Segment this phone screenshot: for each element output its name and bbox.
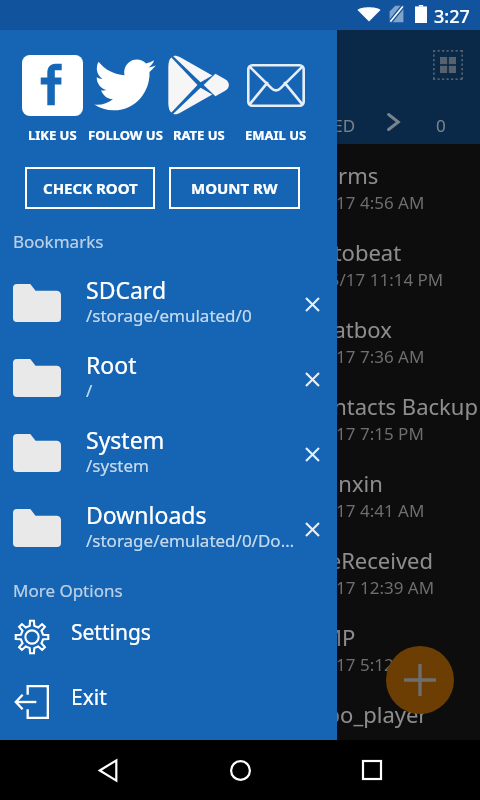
button[interactable]: Home: [216, 746, 264, 794]
staticText: FileReceived: [306, 545, 480, 575]
staticText: 4/4/17 4:56 AM: [304, 191, 480, 214]
staticText: /system: [86, 454, 300, 477]
button[interactable]: CHECK ROOT: [25, 167, 155, 209]
button[interactable]: RATE US: [162, 48, 236, 146]
staticText: 4/8/17 5:12 AM: [304, 653, 480, 676]
staticText: SDCard: [86, 274, 167, 305]
staticText: 4/4/17 7:36 AM: [304, 345, 480, 368]
staticText: Root: [86, 349, 137, 380]
staticText: Alarms: [306, 160, 480, 190]
staticText: /storage/emulated/0/Do…: [86, 529, 300, 552]
staticText: 4/8/17 4:41 AM: [304, 499, 480, 522]
staticText: 4/9/17 12:39 AM: [304, 576, 480, 599]
button[interactable]: Recents: [348, 746, 396, 794]
staticText: SHARED: [290, 114, 356, 137]
staticText: Exit: [71, 683, 107, 712]
button[interactable]: MOUNT RW: [169, 167, 300, 209]
staticText: System: [86, 424, 165, 455]
staticText: Downloads: [86, 499, 207, 530]
staticText: Contacts Backup: [306, 391, 480, 421]
staticText: LIKE US: [28, 126, 77, 144]
staticText: Settings: [71, 618, 151, 647]
button[interactable]: Remove SDCard: [292, 284, 332, 324]
button[interactable]: Add: [386, 646, 454, 714]
staticText: Wanxin: [306, 468, 480, 498]
staticText: CHECK ROOT: [43, 178, 138, 198]
staticText: /: [86, 379, 300, 402]
staticText: 0: [436, 114, 446, 137]
staticText: Bookmarks: [13, 230, 104, 253]
staticText: Autobeat: [306, 237, 480, 267]
button[interactable]: Back: [84, 746, 132, 794]
staticText: mbo_player: [306, 699, 480, 729]
button[interactable]: FOLLOW US: [88, 48, 162, 146]
staticText: More Options: [13, 579, 123, 602]
staticText: RATE US: [173, 126, 225, 144]
staticText: EMAIL US: [245, 126, 307, 144]
staticText: 4/8/17 7:15 PM: [304, 422, 480, 445]
button[interactable]: Root: [0, 340, 337, 415]
button[interactable]: EMAIL US: [239, 48, 313, 146]
button[interactable]: SDCard: [0, 265, 337, 340]
staticText: /storage/emulated/0: [86, 304, 300, 327]
button[interactable]: Settings: [0, 606, 337, 668]
button[interactable]: Remove Root: [292, 359, 332, 399]
staticText: GMP: [306, 622, 480, 652]
button[interactable]: Remove System: [292, 434, 332, 474]
staticText: 3/25/17 11:14 PM: [304, 268, 480, 291]
button[interactable]: Exit: [0, 671, 337, 733]
staticText: MOUNT RW: [191, 178, 278, 198]
button[interactable]: LIKE US: [15, 48, 89, 146]
staticText: Chatbox: [306, 314, 480, 344]
button[interactable]: System: [0, 415, 337, 490]
other: Grid view: [433, 50, 463, 80]
button[interactable]: Downloads: [0, 490, 337, 565]
staticText: FOLLOW US: [88, 126, 162, 144]
button[interactable]: Remove Downloads: [292, 509, 332, 549]
staticText: 3:27: [434, 4, 470, 29]
